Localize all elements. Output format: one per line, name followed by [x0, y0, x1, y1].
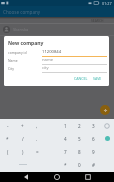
button[interactable]: [15, 158, 30, 171]
button[interactable]: .: [30, 132, 44, 145]
button[interactable]: Add company: [100, 105, 110, 115]
button[interactable]: =: [30, 145, 44, 158]
button[interactable]: (: [0, 145, 15, 158]
staticText: 8: [78, 149, 81, 155]
button[interactable]: 4: [58, 132, 72, 145]
button[interactable]: /: [15, 132, 30, 145]
button[interactable]: 3: [86, 119, 100, 132]
button[interactable]: 8: [72, 145, 86, 158]
staticText: Name: [8, 58, 18, 63]
button[interactable]: +: [15, 119, 30, 132]
staticText: 7: [64, 149, 67, 155]
staticText: (: [7, 149, 9, 155]
staticText: .: [36, 136, 38, 142]
staticText: *: [64, 162, 67, 168]
button[interactable]: -: [0, 119, 15, 132]
button[interactable]: *: [0, 132, 15, 145]
staticText: SEARCH: [91, 18, 104, 22]
staticText: New company: [8, 40, 44, 47]
button[interactable]: Back: [21, 172, 31, 182]
button[interactable]: *: [58, 158, 72, 171]
button[interactable]: CANCEL: [72, 75, 90, 82]
button[interactable]: #: [86, 158, 100, 171]
button[interactable]: ): [15, 145, 30, 158]
staticText: City: [8, 66, 14, 71]
button[interactable]: Skanska: [0, 24, 114, 35]
staticText: city: [42, 65, 49, 71]
staticText: 3: [92, 123, 95, 129]
staticText: 4: [64, 136, 67, 142]
button[interactable]: Recents: [83, 172, 93, 182]
staticText: Skanska: [13, 27, 29, 32]
staticText: 5: [78, 136, 81, 142]
button[interactable]: 6: [86, 132, 100, 145]
button[interactable]: 1: [58, 119, 72, 132]
staticText: 11200844: [42, 49, 62, 55]
staticText: SAVE: [93, 76, 102, 81]
button[interactable]: 2: [72, 119, 86, 132]
staticText: name: [42, 57, 54, 63]
staticText: =: [36, 149, 39, 155]
button[interactable]: 9: [86, 145, 100, 158]
staticText: ,: [36, 123, 38, 129]
staticText: 2: [78, 123, 81, 129]
staticText: company id: [8, 50, 27, 55]
staticText: 9: [92, 149, 95, 155]
staticText: 0: [78, 162, 81, 168]
staticText: -: [7, 123, 9, 129]
staticText: *: [6, 136, 9, 142]
button[interactable]: 0: [72, 158, 86, 171]
staticText: ): [22, 149, 24, 155]
staticText: 6: [92, 136, 95, 142]
staticText: Choose company: [3, 9, 41, 15]
button[interactable]: ,: [30, 119, 44, 132]
other: Enter: [105, 136, 110, 141]
button[interactable]: 5: [72, 132, 86, 145]
button[interactable]: SAVE: [91, 75, 104, 82]
button[interactable]: Enter: [100, 132, 114, 145]
button[interactable]: Backspace: [100, 119, 114, 132]
staticText: 01:27: [102, 1, 112, 6]
other: Backspace: [104, 123, 110, 129]
staticText: #: [92, 162, 95, 168]
staticText: +: [21, 123, 24, 129]
button[interactable]: 7: [58, 145, 72, 158]
staticText: CANCEL: [74, 76, 88, 81]
staticText: /: [22, 136, 24, 142]
staticText: 1: [64, 123, 67, 129]
button[interactable]: Home: [52, 172, 62, 182]
